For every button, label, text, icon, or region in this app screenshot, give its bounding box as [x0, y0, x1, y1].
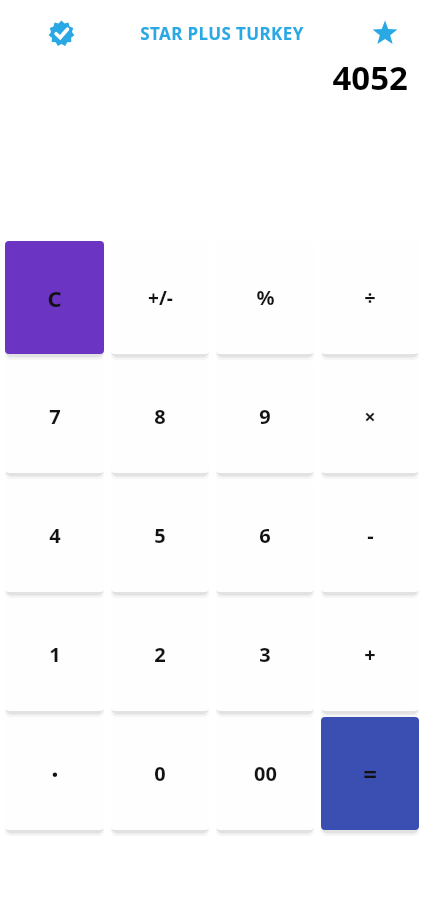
- button[interactable]: ÷: [321, 241, 419, 354]
- staticText: 00: [254, 760, 277, 787]
- button[interactable]: +: [321, 598, 419, 711]
- button[interactable]: 6: [216, 479, 314, 592]
- button[interactable]: +/-: [111, 241, 209, 354]
- staticText: 3: [259, 641, 271, 668]
- staticText: 7: [49, 403, 61, 430]
- staticText: 2: [154, 641, 166, 668]
- staticText: C: [47, 283, 62, 313]
- staticText: +: [364, 641, 376, 668]
- button[interactable]: 1: [5, 598, 104, 711]
- staticText: 5: [154, 522, 166, 549]
- staticText: 8: [154, 403, 166, 430]
- button[interactable]: C: [5, 241, 104, 354]
- staticText: 1: [49, 641, 61, 668]
- staticText: ×: [364, 403, 376, 430]
- staticText: 9: [259, 403, 271, 430]
- staticText: 4: [49, 522, 61, 549]
- button[interactable]: ×: [321, 360, 419, 473]
- button[interactable]: =: [321, 717, 419, 830]
- staticText: =: [363, 757, 377, 790]
- button[interactable]: 00: [216, 717, 314, 830]
- button[interactable]: 2: [111, 598, 209, 711]
- button[interactable]: 3: [216, 598, 314, 711]
- staticText: -: [367, 522, 374, 549]
- button[interactable]: 9: [216, 360, 314, 473]
- button[interactable]: 0: [111, 717, 209, 830]
- staticText: +/-: [148, 285, 173, 311]
- button[interactable]: Favorite: [368, 16, 402, 50]
- button[interactable]: ·: [5, 717, 104, 830]
- button[interactable]: Verified: [46, 18, 76, 48]
- staticText: 4052: [332, 55, 408, 100]
- button[interactable]: 8: [111, 360, 209, 473]
- staticText: STAR PLUS TURKEY: [140, 22, 304, 45]
- staticText: 0: [154, 760, 166, 787]
- button[interactable]: %: [216, 241, 314, 354]
- staticText: ÷: [364, 284, 376, 311]
- staticText: %: [256, 284, 275, 311]
- button[interactable]: STAR PLUS TURKEY: [76, 22, 368, 45]
- staticText: ·: [51, 756, 59, 791]
- staticText: 6: [259, 522, 271, 549]
- button[interactable]: 5: [111, 479, 209, 592]
- button[interactable]: 7: [5, 360, 104, 473]
- button[interactable]: 4: [5, 479, 104, 592]
- button[interactable]: -: [321, 479, 419, 592]
